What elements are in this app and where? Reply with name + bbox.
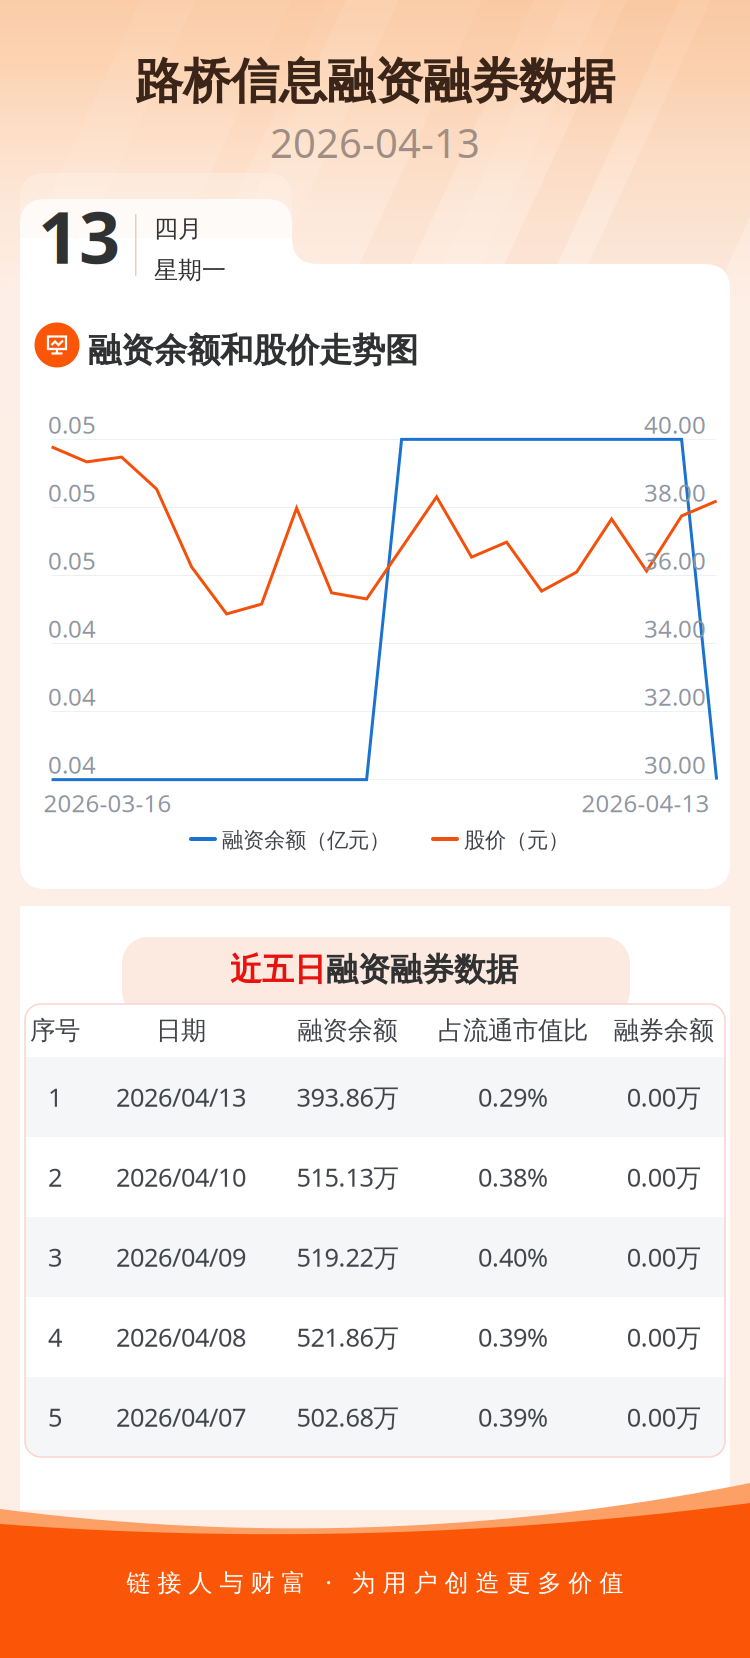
staticText: 股价（元） — [464, 827, 569, 853]
staticText: 0.04 — [48, 612, 96, 644]
staticText: 0.00万 — [627, 1240, 701, 1274]
staticText: 日期 — [156, 1015, 206, 1046]
staticText: 2026/04/10 — [116, 1160, 246, 1194]
staticText: 5 — [48, 1400, 62, 1434]
staticText: 0.00万 — [627, 1080, 701, 1114]
staticText: 0.05 — [48, 408, 96, 440]
staticText: 515.13万 — [296, 1160, 398, 1194]
staticText: 融资融券数据 — [326, 950, 518, 989]
staticText: 32.00 — [644, 681, 706, 712]
staticText: 0.04 — [48, 749, 96, 780]
staticText: 0.39% — [478, 1320, 548, 1354]
staticText: 占流通市值比 — [438, 1015, 588, 1046]
staticText: 2026/04/09 — [116, 1240, 246, 1274]
staticText: 4 — [48, 1320, 62, 1354]
staticText: 0.38% — [478, 1160, 548, 1194]
staticText: 1 — [48, 1080, 62, 1114]
staticText: 四月 — [154, 214, 202, 243]
staticText: 0.00万 — [627, 1160, 701, 1194]
staticText: 0.05 — [48, 544, 96, 576]
staticText: 38.00 — [644, 476, 706, 508]
staticText: 序号 — [30, 1015, 80, 1046]
staticText: 34.00 — [644, 612, 706, 644]
staticText: 40.00 — [644, 408, 706, 440]
staticText: 0.39% — [478, 1400, 548, 1434]
staticText: 链接人与财富 · 为用户创造更多价值 — [126, 1566, 623, 1598]
staticText: 融资余额 — [297, 1015, 397, 1046]
staticText: 393.86万 — [296, 1080, 398, 1114]
staticText: 502.68万 — [296, 1400, 398, 1434]
staticText: 融券余额 — [614, 1015, 714, 1046]
staticText: 2026-03-16 — [44, 787, 172, 819]
staticText: 2026/04/07 — [116, 1400, 246, 1434]
staticText: 0.00万 — [627, 1320, 701, 1354]
staticText: 2026/04/08 — [116, 1320, 246, 1354]
staticText: 2026/04/13 — [116, 1080, 246, 1114]
staticText: 521.86万 — [296, 1320, 398, 1354]
staticText: 13 — [38, 188, 120, 284]
staticText: 路桥信息融资融券数据 — [135, 52, 615, 111]
staticText: 融资余额（亿元） — [222, 827, 390, 853]
staticText: 近五日 — [230, 950, 326, 989]
staticText: 0.04 — [48, 681, 96, 712]
staticText: 0.00万 — [627, 1400, 701, 1434]
staticText: 融资余额和股价走势图 — [88, 330, 418, 371]
staticText: 2026-04-13 — [582, 787, 710, 819]
staticText: 519.22万 — [296, 1240, 398, 1274]
staticText: 30.00 — [644, 749, 706, 780]
staticText: 0.29% — [478, 1080, 548, 1114]
staticText: 2026-04-13 — [270, 116, 480, 169]
staticText: 星期一 — [154, 255, 226, 285]
staticText: 3 — [48, 1240, 62, 1274]
staticText: 2 — [48, 1160, 62, 1194]
staticText: 36.00 — [644, 544, 706, 576]
staticText: 0.05 — [48, 476, 96, 508]
staticText: 0.40% — [478, 1240, 548, 1274]
